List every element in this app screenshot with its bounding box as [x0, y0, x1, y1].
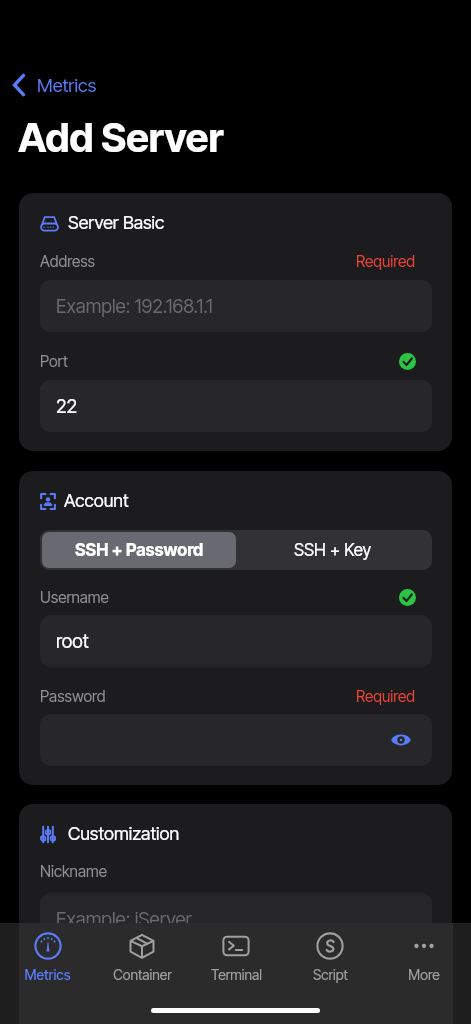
button[interactable]: Terminal [189, 923, 283, 985]
staticText: SSH + Key [294, 540, 372, 561]
staticText: Customization [68, 823, 180, 845]
button[interactable]: 22 [40, 380, 432, 432]
button[interactable]: Show password [40, 714, 432, 766]
button[interactable]: Example: iServer [40, 893, 432, 945]
button[interactable]: SSH + Key [236, 532, 430, 568]
staticText: SSH + Password [75, 540, 204, 561]
staticText: Example: 192.168.1.1 [56, 295, 213, 318]
staticText: Example: iServer [56, 908, 192, 931]
button[interactable]: root [40, 615, 432, 667]
staticText: Add Server [18, 113, 224, 161]
staticText: Account [64, 490, 129, 512]
staticText: Container [113, 966, 172, 983]
staticText: Metrics [24, 966, 71, 983]
button[interactable]: More [377, 923, 471, 985]
staticText: Address [40, 252, 95, 271]
staticText: Required [356, 252, 416, 271]
button[interactable]: SSH + Password [42, 532, 236, 568]
staticText: root [56, 630, 89, 653]
button[interactable]: Metrics [11, 71, 97, 99]
button[interactable]: Container [95, 923, 189, 985]
button[interactable]: Metrics [0, 923, 95, 985]
button[interactable]: Script [283, 923, 377, 985]
button[interactable]: Show password [388, 727, 414, 753]
staticText: Port [40, 352, 69, 371]
staticText: Nickname [40, 862, 107, 881]
staticText: Metrics [37, 74, 97, 96]
staticText: Server Basic [68, 212, 165, 234]
staticText: More [408, 966, 440, 983]
staticText: Username [40, 588, 109, 607]
staticText: 22 [56, 395, 78, 418]
staticText: Password [40, 687, 106, 706]
staticText: Required [356, 687, 416, 706]
staticText: Terminal [211, 966, 262, 983]
button[interactable]: Example: 192.168.1.1 [40, 280, 432, 332]
staticText: Script [313, 966, 348, 983]
